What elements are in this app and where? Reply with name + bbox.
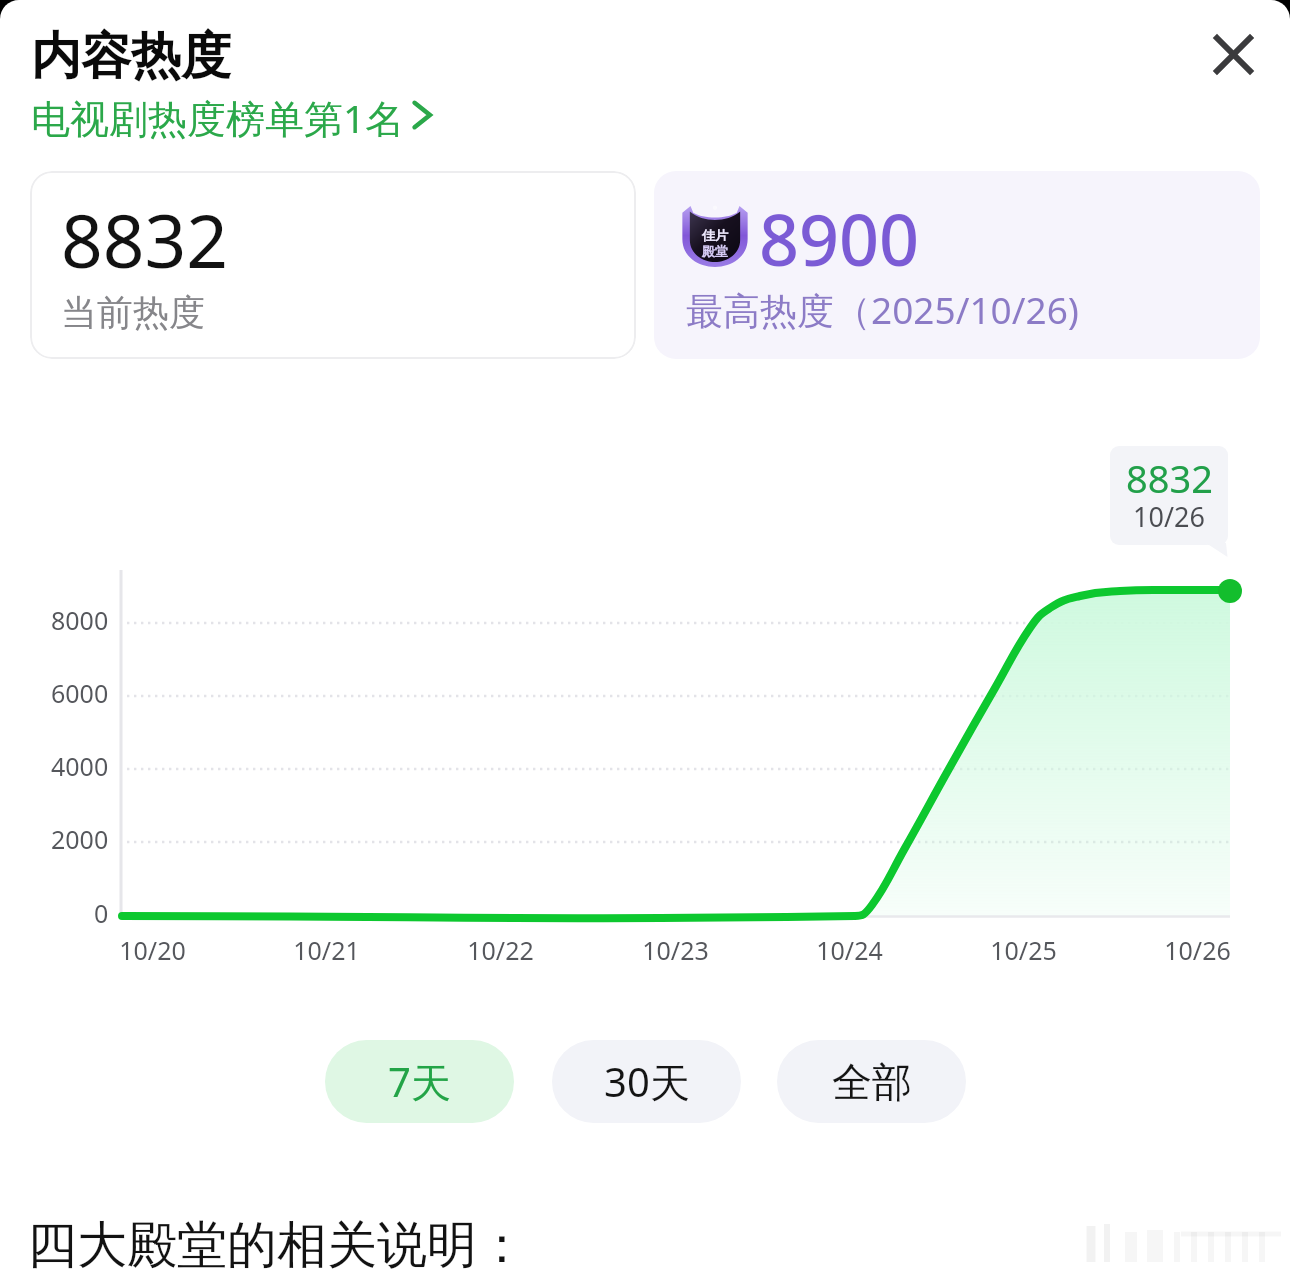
staticText: 最高热度（2025/10/26) <box>686 284 1079 335</box>
staticText: 10/26 <box>1164 933 1231 967</box>
staticText: 内容热度 <box>31 25 231 88</box>
staticText: 30天 <box>604 1054 690 1109</box>
staticText: 7天 <box>388 1054 451 1109</box>
staticText: 10/21 <box>293 933 360 967</box>
staticText: 8900 <box>759 191 920 286</box>
staticText: 10/23 <box>642 933 709 967</box>
button[interactable]: 全部 <box>777 1040 966 1123</box>
staticText: 10/24 <box>816 933 883 967</box>
staticText: 2000 <box>51 822 109 856</box>
staticText: 10/22 <box>467 933 534 967</box>
staticText: 10/20 <box>119 933 186 967</box>
staticText: 8832 <box>1126 452 1213 504</box>
staticText: 全部 <box>832 1057 912 1107</box>
staticText: 电视剧热度榜单第1名 <box>31 91 405 144</box>
staticText: 10/26 <box>1133 498 1205 535</box>
button[interactable]: 电视剧热度榜单第1名 <box>31 91 434 144</box>
staticText: 0 <box>94 896 109 930</box>
staticText: 8000 <box>51 603 109 637</box>
staticText: 当前热度 <box>61 290 205 335</box>
staticText: 佳片 <box>702 227 728 243</box>
button[interactable]: 7天 <box>325 1040 514 1123</box>
staticText: 8832 <box>61 190 229 289</box>
button[interactable]: 佳片 <box>654 171 1260 359</box>
staticText: 6000 <box>51 676 109 710</box>
staticText: 四大殿堂的相关说明： <box>27 1214 527 1277</box>
button[interactable]: 8832 <box>30 171 636 359</box>
button[interactable]: Close <box>1183 4 1283 104</box>
staticText: 4000 <box>51 749 109 783</box>
button[interactable]: 30天 <box>552 1040 741 1123</box>
staticText: 殿堂 <box>702 243 728 259</box>
staticText: 10/25 <box>990 933 1057 967</box>
